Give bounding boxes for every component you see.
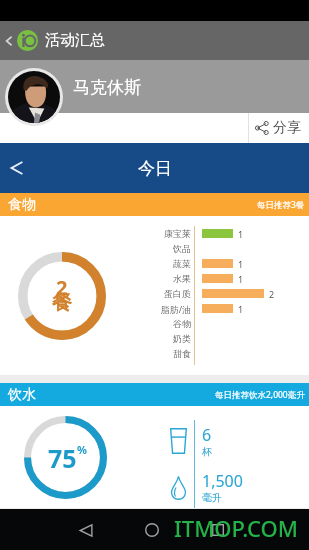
button[interactable]: Share: [244, 113, 309, 143]
button[interactable]: 食物: [0, 193, 309, 216]
staticText: 2: [56, 274, 68, 301]
button[interactable]: Home: [136, 514, 168, 546]
button[interactable]: 饮水: [0, 383, 309, 406]
staticText: 毫升: [202, 491, 222, 504]
staticText: 1: [238, 228, 244, 240]
button[interactable]: App logo: [0, 21, 309, 60]
staticText: 甜食: [154, 348, 191, 359]
button[interactable]: 2: [0, 216, 309, 375]
staticText: 食物: [8, 196, 36, 214]
staticText: 1: [238, 303, 244, 315]
staticText: 康宝莱: [154, 228, 191, 239]
staticText: 水果: [154, 273, 191, 284]
staticText: 2: [269, 288, 275, 300]
other: App logo: [17, 30, 38, 51]
staticText: 每日推荐饮水2,000毫升: [215, 389, 305, 401]
staticText: 1: [238, 258, 244, 270]
staticText: ITMOP.COM: [174, 513, 309, 543]
button[interactable]: Recents: [202, 514, 234, 546]
staticText: 饮水: [8, 386, 36, 404]
other: Share: [254, 120, 270, 136]
button[interactable]: Back: [70, 514, 102, 546]
staticText: 75: [48, 441, 77, 475]
staticText: 今日: [138, 158, 172, 179]
staticText: 活动汇总: [45, 31, 105, 50]
staticText: 杯: [202, 445, 212, 458]
staticText: 每日推荐3餐: [257, 199, 305, 211]
staticText: 1,500: [202, 470, 243, 492]
staticText: 奶类: [154, 333, 191, 344]
staticText: 谷物: [154, 318, 191, 329]
staticText: 脂肪/油: [154, 303, 191, 315]
staticText: 餐: [52, 290, 72, 315]
staticText: 蛋白质: [154, 288, 191, 299]
staticText: 1: [238, 273, 244, 285]
staticText: 分享: [273, 119, 301, 137]
staticText: 6: [202, 424, 212, 446]
button[interactable]: Profile photo: [8, 71, 60, 123]
staticText: %: [77, 442, 87, 457]
staticText: 蔬菜: [154, 258, 191, 269]
button[interactable]: Previous day: [0, 151, 34, 185]
staticText: 饮品: [154, 243, 191, 254]
staticText: 马克休斯: [73, 77, 141, 98]
